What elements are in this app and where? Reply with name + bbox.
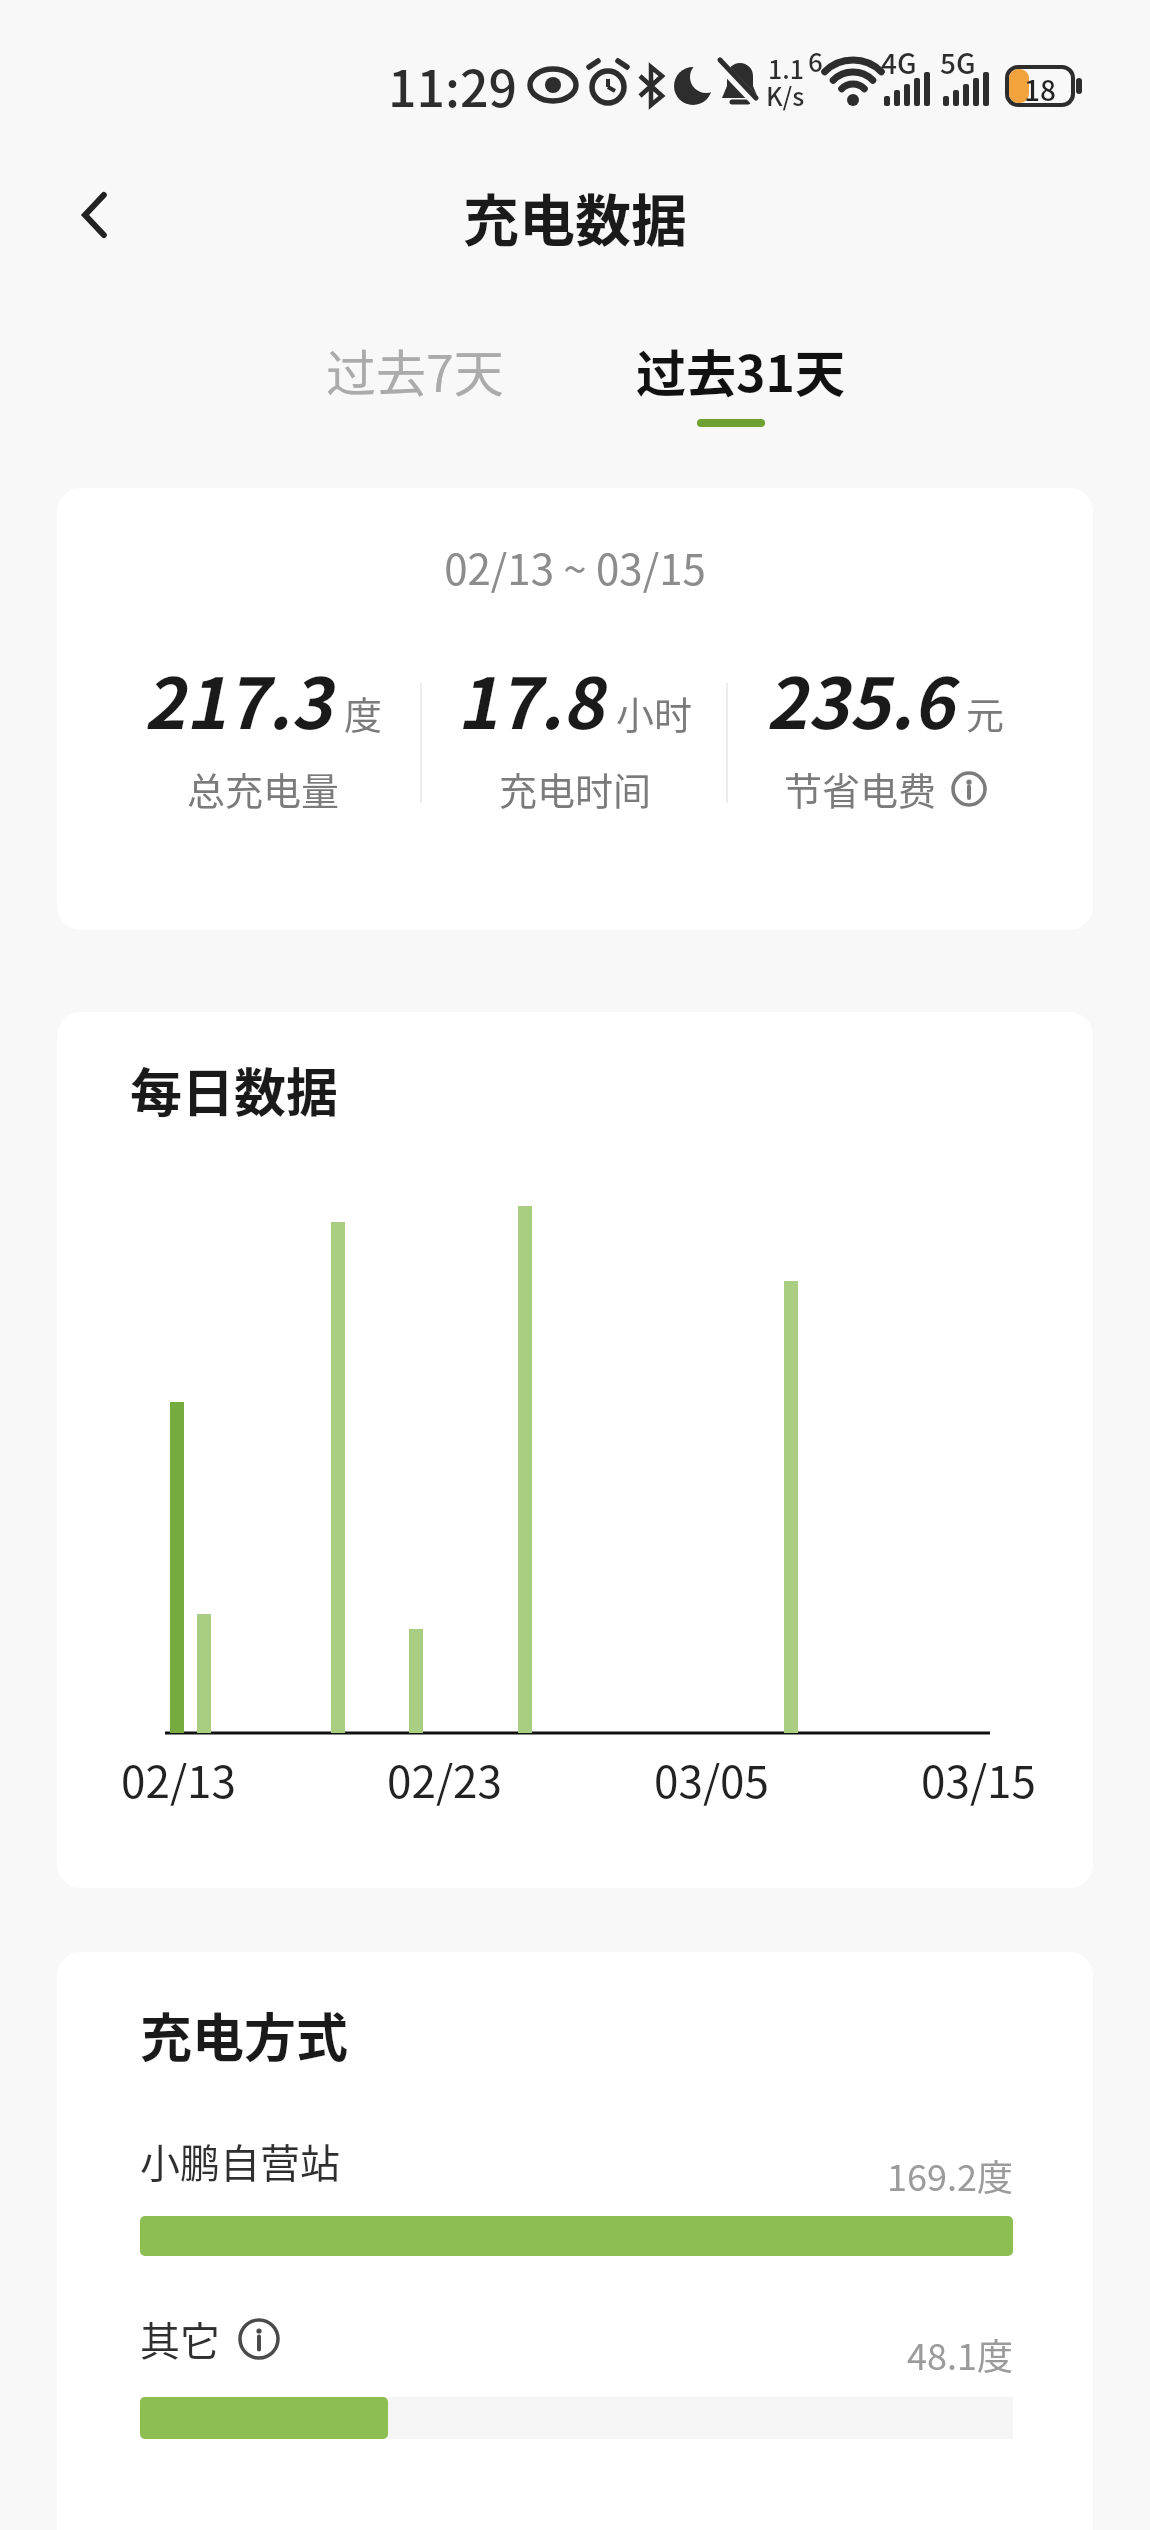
staticText: K/s bbox=[766, 77, 805, 113]
staticText: 6 bbox=[808, 42, 823, 80]
staticText: 17.8 bbox=[457, 648, 604, 749]
staticText: 过去7天 bbox=[326, 334, 504, 406]
staticText: 小鹏自营站 bbox=[140, 2132, 340, 2190]
staticText: 02/13 bbox=[121, 1747, 236, 1811]
button[interactable] bbox=[140, 2216, 1013, 2256]
button[interactable] bbox=[951, 771, 987, 807]
staticText: 其它 bbox=[140, 2310, 220, 2368]
staticText: 总充电量 bbox=[187, 761, 340, 816]
staticText: 02/13 ~ 03/15 bbox=[57, 536, 1093, 597]
staticText: 节省电费 bbox=[784, 761, 937, 816]
staticText: 5G bbox=[940, 42, 976, 83]
staticText: 235.6 bbox=[766, 648, 954, 749]
staticText: 充电方式 bbox=[140, 1997, 349, 2072]
staticText: 11:29 bbox=[388, 49, 517, 121]
staticText: 169.2度 bbox=[57, 2149, 1013, 2201]
staticText: 1.1 bbox=[768, 50, 804, 86]
staticText: 02/23 bbox=[387, 1747, 502, 1811]
staticText: 4G bbox=[881, 42, 917, 83]
staticText: 小时 bbox=[616, 685, 693, 740]
staticText: 217.3 bbox=[144, 648, 332, 749]
staticText: 度 bbox=[344, 685, 383, 740]
staticText: 充电数据 bbox=[0, 176, 1150, 257]
staticText: 03/05 bbox=[654, 1747, 769, 1811]
staticText: 每日数据 bbox=[130, 1052, 339, 1127]
button[interactable] bbox=[238, 2318, 280, 2360]
button[interactable]: 过去31天 bbox=[625, 320, 855, 420]
staticText: 48.1度 bbox=[57, 2328, 1013, 2380]
staticText: 18 bbox=[1024, 69, 1056, 110]
button[interactable]: 过去7天 bbox=[310, 320, 520, 420]
staticText: 03/15 bbox=[921, 1747, 1036, 1811]
button[interactable] bbox=[60, 180, 130, 250]
staticText: 充电时间 bbox=[499, 761, 652, 816]
staticText: 过去31天 bbox=[636, 334, 845, 406]
staticText: 元 bbox=[966, 685, 1005, 740]
